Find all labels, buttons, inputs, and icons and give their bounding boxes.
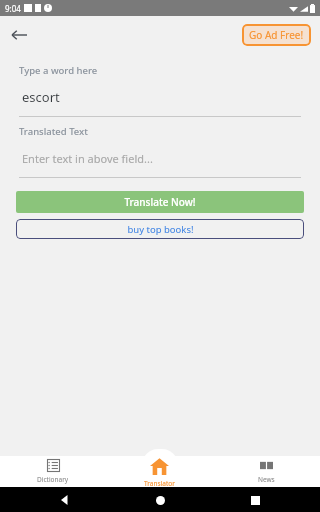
button[interactable]: Translator [106,456,213,487]
button[interactable]: Translate Now! [16,191,304,213]
staticText: Type a word here [19,64,98,77]
button[interactable]: escort [19,88,301,106]
button[interactable]: buy top books! [16,219,304,239]
staticText: escort [22,88,60,106]
staticText: 9:04 [5,3,21,14]
staticText: Enter text in above field... [22,151,153,166]
button[interactable]: Go Ad Free! [242,24,311,46]
button[interactable]: Enter text in above field... [19,151,301,166]
staticText: Go Ad Free! [249,28,304,42]
button[interactable]: Dictionary [0,459,106,484]
staticText: News [258,475,275,484]
staticText: Dictionary [37,475,69,484]
staticText: buy top books! [127,223,194,236]
button[interactable]: News [213,459,320,484]
staticText: Translate Now! [124,195,196,209]
staticText: Translator [144,479,175,487]
staticText: Translated Text [19,125,88,138]
button[interactable]: Back [4,20,34,50]
